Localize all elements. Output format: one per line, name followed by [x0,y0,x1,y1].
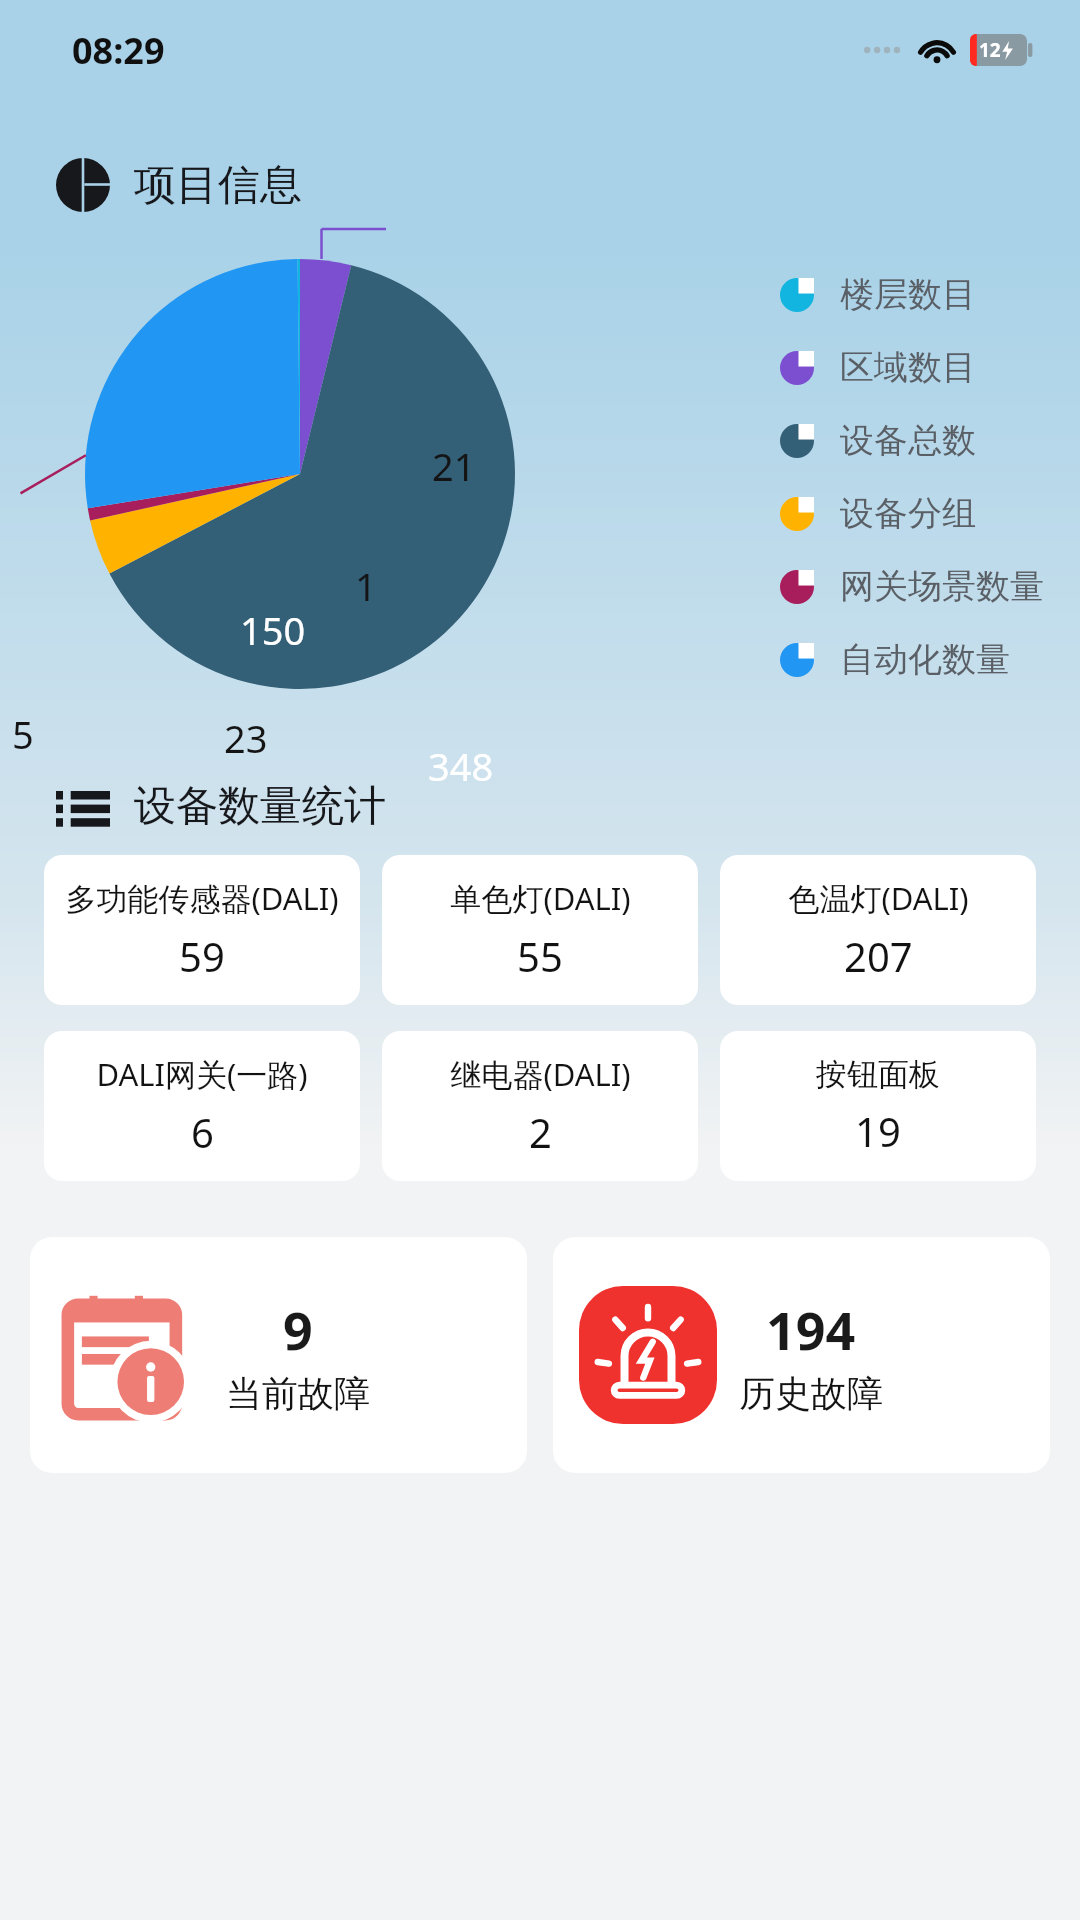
staticText: 区域数目 [840,346,976,389]
button[interactable]: 设备总数 [780,419,976,462]
staticText: 194 [766,1294,856,1365]
button[interactable]: 继电器(DALI) [382,1031,698,1181]
button[interactable]: 单色灯(DALI) [382,855,698,1005]
staticText: 历史故障 [739,1371,883,1416]
staticText: 19 [855,1104,901,1158]
button[interactable]: 多功能传感器(DALI) [44,855,360,1005]
button[interactable]: 历史故障 [553,1237,1050,1473]
button[interactable]: 设备分组 [780,492,976,535]
staticText: 单色灯(DALI) [450,877,631,919]
button[interactable]: 网关场景数量 [780,565,1044,608]
button[interactable]: 区域数目 [780,346,976,389]
staticText: 08:29 [72,26,165,75]
staticText: 55 [517,929,563,983]
other: 历史故障 [579,1286,717,1424]
staticText: 1 [355,560,377,612]
staticText: 多功能传感器(DALI) [65,877,339,919]
staticText: 自动化数量 [840,638,1010,681]
staticText: 23 [224,712,268,764]
staticText: 设备数量统计 [134,780,386,833]
staticText: 设备总数 [840,419,976,462]
staticText: 5 [12,708,34,760]
staticText: 项目信息 [134,159,302,212]
button[interactable]: 自动化数量 [780,638,1010,681]
staticText: 楼层数目 [840,273,976,316]
staticText: 当前故障 [226,1371,370,1416]
staticText: 21 [432,440,476,492]
staticText: 2 [529,1105,552,1159]
button[interactable]: 按钮面板 [720,1031,1036,1181]
staticText: DALI网关(一路) [96,1053,308,1095]
staticText: 348 [428,740,494,792]
staticText: 12 [979,37,1001,63]
staticText: 150 [240,604,306,656]
staticText: 设备分组 [840,492,976,535]
staticText: 6 [191,1105,214,1159]
button[interactable]: DALI网关(一路) [44,1031,360,1181]
staticText: 9 [283,1294,313,1365]
button[interactable]: 色温灯(DALI) [720,855,1036,1005]
button[interactable]: 楼层数目 [780,273,976,316]
staticText: 色温灯(DALI) [788,877,969,919]
staticText: 网关场景数量 [840,565,1044,608]
other: 当前故障 [56,1281,204,1429]
staticText: 59 [179,929,225,983]
staticText: 继电器(DALI) [450,1053,631,1095]
staticText: 207 [844,929,913,983]
button[interactable]: 当前故障 [30,1237,527,1473]
staticText: 按钮面板 [816,1055,940,1094]
